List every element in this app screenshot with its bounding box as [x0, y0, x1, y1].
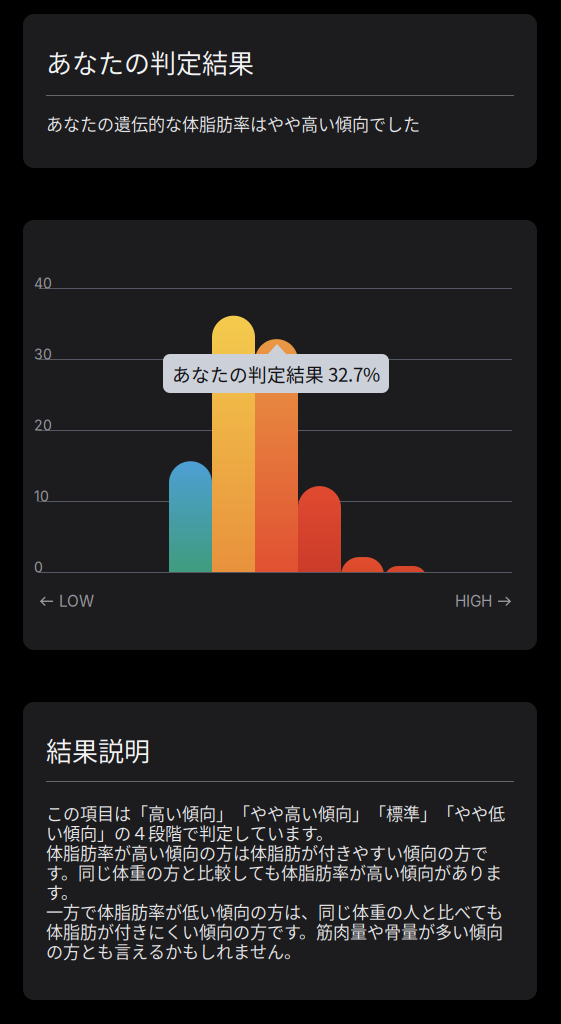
staticText: す。 — [46, 879, 78, 904]
staticText: す。同じ体重の方と比較しても体脂肪率が高い傾向がありま — [46, 860, 502, 884]
staticText: の方とも言えるかもしれません。 — [46, 938, 301, 963]
staticText: 結果説明 — [46, 731, 150, 769]
staticText: 体脂肪率が高い傾向の方は体脂肪が付きやすい傾向の方で — [46, 840, 488, 865]
staticText: 0 — [34, 559, 43, 576]
staticText: 20 — [34, 417, 52, 434]
staticText: い傾向」の４段階で判定しています。 — [46, 820, 333, 845]
staticText: 10 — [34, 488, 49, 505]
staticText: 40 — [34, 275, 52, 292]
staticText: HIGH — [455, 592, 492, 611]
staticText: LOW — [59, 592, 94, 611]
staticText: あなたの判定結果 32.7% — [172, 360, 380, 387]
staticText: あなたの判定結果 — [46, 43, 254, 81]
staticText: 30 — [34, 346, 52, 363]
staticText: 体脂肪が付きにくい傾向の方です。筋肉量や骨量が多い傾向 — [46, 919, 503, 943]
staticText: あなたの遺伝的な体脂肪率はやや高い傾向でした — [46, 111, 420, 136]
staticText: 一方で体脂肪率が低い傾向の方は、同じ体重の人と比べても — [46, 899, 503, 924]
staticText: この項目は「高い傾向」「やや高い傾向」「標準」「やや低 — [46, 800, 505, 825]
